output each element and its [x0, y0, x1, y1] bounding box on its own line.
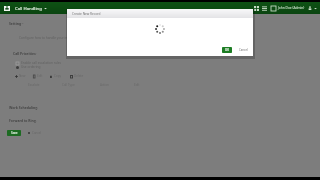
staticText: Cancel — [239, 48, 248, 52]
staticText: Save — [11, 131, 18, 135]
staticText: Call Priorities — [13, 51, 36, 56]
button[interactable]: Dashboard — [254, 6, 259, 11]
staticText: OK — [225, 48, 229, 52]
staticText: Escalate — [28, 83, 62, 87]
button[interactable]: Help — [271, 6, 276, 11]
staticText: John Doe (Admin) — [278, 6, 305, 10]
button[interactable]: Copy — [50, 74, 62, 78]
staticText: Copy — [54, 74, 62, 78]
button[interactable]: OK — [222, 47, 232, 53]
button[interactable]: Use ordering — [16, 65, 41, 69]
staticText: Call Handling — [15, 5, 42, 11]
staticText: Work Scheduling — [9, 105, 38, 110]
staticText: Use ordering — [21, 65, 41, 69]
staticText: Edit — [134, 83, 146, 87]
button[interactable]: Save — [7, 130, 21, 136]
button[interactable]: Call Handling — [15, 5, 47, 11]
staticText: Delete — [74, 74, 84, 78]
button[interactable]: Account — [308, 6, 312, 10]
button[interactable]: Enable call escalation rules — [16, 61, 62, 65]
staticText: Create New Record — [72, 12, 101, 16]
button[interactable]: Delete — [70, 74, 84, 78]
button[interactable]: Edit — [33, 74, 43, 78]
button[interactable]: App menu — [4, 6, 10, 11]
staticText: Enable call escalation rules — [21, 61, 62, 65]
staticText: New — [19, 74, 26, 78]
staticText: Edit — [37, 74, 43, 78]
button[interactable]: Reports — [262, 6, 267, 11]
staticText: Forward to Ring — [9, 118, 36, 123]
button[interactable]: Cancel — [28, 131, 42, 135]
staticText: Cancel — [32, 131, 42, 135]
staticText: Configure how to handle your incoming ca… — [19, 36, 86, 40]
button[interactable]: Cancel — [238, 47, 248, 53]
button[interactable]: New — [15, 74, 26, 78]
staticText: Setting — [9, 21, 22, 26]
